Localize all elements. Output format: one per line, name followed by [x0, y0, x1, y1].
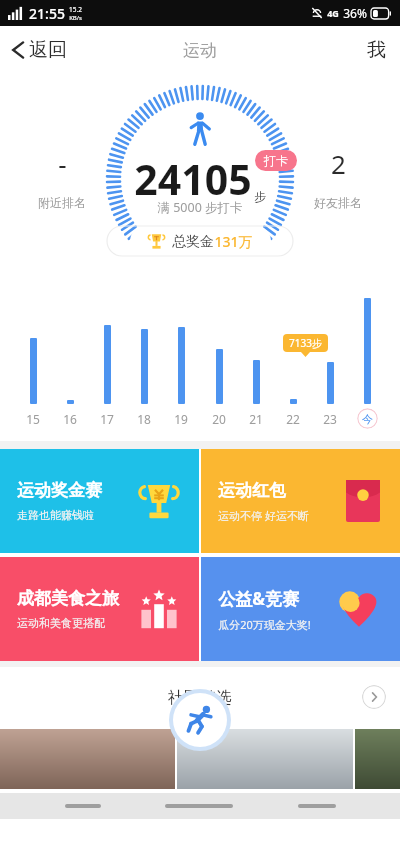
button[interactable]: 2	[298, 146, 378, 210]
staticText: 21	[249, 411, 263, 427]
button[interactable]	[290, 399, 297, 404]
staticText: 2	[331, 146, 346, 181]
staticText: 附近排名	[38, 195, 86, 210]
button[interactable]: 我	[353, 32, 400, 68]
staticText: 4G	[327, 7, 339, 19]
staticText: -	[58, 146, 67, 181]
staticText: 步	[254, 189, 266, 204]
button[interactable]	[216, 349, 223, 404]
button[interactable]: 社区精选	[0, 675, 400, 721]
staticText: 22	[286, 411, 300, 427]
staticText: 成都美食之旅	[17, 588, 119, 609]
staticText: 今	[362, 412, 373, 426]
staticText: 15	[26, 411, 40, 427]
button[interactable]	[178, 327, 185, 404]
staticText: 21:55	[29, 4, 65, 23]
button[interactable]	[104, 325, 111, 404]
button[interactable]: 返回	[0, 32, 77, 68]
staticText: 16	[63, 411, 77, 427]
button[interactable]	[141, 329, 148, 404]
button[interactable]: Navigation	[298, 804, 336, 808]
staticText: 返回	[29, 38, 67, 62]
staticText: 我	[367, 38, 386, 62]
button[interactable]	[253, 360, 260, 404]
staticText: 7133步	[289, 336, 322, 350]
staticText: 运动红包	[218, 480, 286, 501]
staticText: 131万	[214, 232, 253, 251]
staticText: 19	[174, 411, 188, 427]
button[interactable]: 今	[357, 408, 378, 429]
staticText: 走路也能赚钱啦	[17, 508, 94, 522]
staticText: KB/s	[69, 14, 82, 22]
staticText: 23	[323, 411, 337, 427]
staticText: 运动不停 好运不断	[218, 508, 309, 523]
staticText: 总奖金	[172, 233, 214, 251]
button[interactable]: 运动奖金赛	[0, 449, 199, 553]
button[interactable]: Navigation	[65, 804, 101, 808]
staticText: 打卡	[264, 153, 288, 168]
staticText: 运动奖金赛	[17, 480, 102, 501]
button[interactable]: -	[22, 146, 102, 210]
button[interactable]: 运动红包	[201, 449, 400, 553]
staticText: 24105	[134, 151, 252, 207]
button[interactable]: Start run	[169, 689, 231, 751]
button[interactable]: Navigation	[165, 804, 233, 808]
staticText: 18	[137, 411, 151, 427]
staticText: 36%	[343, 5, 367, 21]
button[interactable]	[327, 362, 334, 404]
button[interactable]: 公益&竞赛	[201, 557, 400, 661]
button[interactable]: More	[362, 685, 386, 709]
staticText: 运动	[183, 40, 217, 61]
button[interactable]: 打卡	[255, 150, 297, 171]
staticText: 公益&竞赛	[218, 587, 299, 610]
staticText: 瓜分20万现金大奖!	[218, 617, 311, 632]
staticText: 满 5000 步打卡	[157, 199, 243, 216]
staticText: 运动和美食更搭配	[17, 616, 105, 630]
button[interactable]	[364, 298, 371, 404]
staticText: 好友排名	[314, 195, 362, 210]
staticText: 社区精选	[168, 688, 232, 708]
button[interactable]: Photo	[177, 729, 353, 789]
button[interactable]: 总奖金	[130, 226, 271, 257]
button[interactable]: Photo	[0, 729, 175, 789]
staticText: 17	[100, 411, 114, 427]
staticText: 20	[212, 411, 226, 427]
button[interactable]: Photo	[355, 729, 400, 789]
button[interactable]	[30, 338, 37, 404]
button[interactable]	[67, 400, 74, 404]
staticText: 15.2	[69, 5, 82, 14]
button[interactable]: 成都美食之旅	[0, 557, 199, 661]
